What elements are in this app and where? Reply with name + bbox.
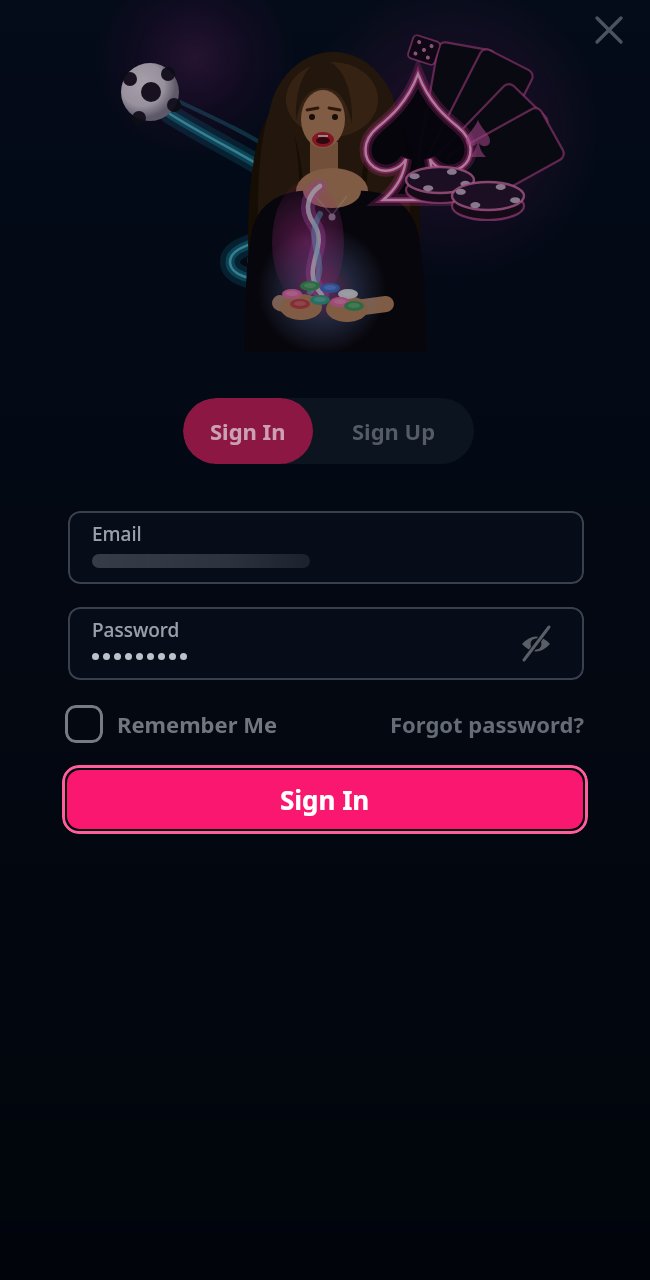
staticText: Sign Up: [352, 416, 436, 446]
staticText: Remember Me: [117, 709, 278, 739]
staticText: Sign In: [210, 416, 286, 446]
staticText: Forgot password?: [390, 709, 584, 739]
button[interactable]: [518, 626, 554, 662]
button[interactable]: Sign In: [67, 770, 583, 829]
button[interactable]: Email: [68, 511, 584, 584]
button[interactable]: [586, 7, 632, 53]
button[interactable]: Sign In: [183, 398, 313, 464]
button[interactable]: Forgot password?: [390, 709, 584, 739]
staticText: Sign In: [280, 782, 370, 817]
button[interactable]: Password: [68, 607, 584, 680]
staticText: Password: [92, 617, 180, 643]
button[interactable]: Sign Up: [313, 398, 474, 464]
staticText: Email: [92, 521, 142, 547]
button[interactable]: Remember Me: [65, 705, 278, 743]
